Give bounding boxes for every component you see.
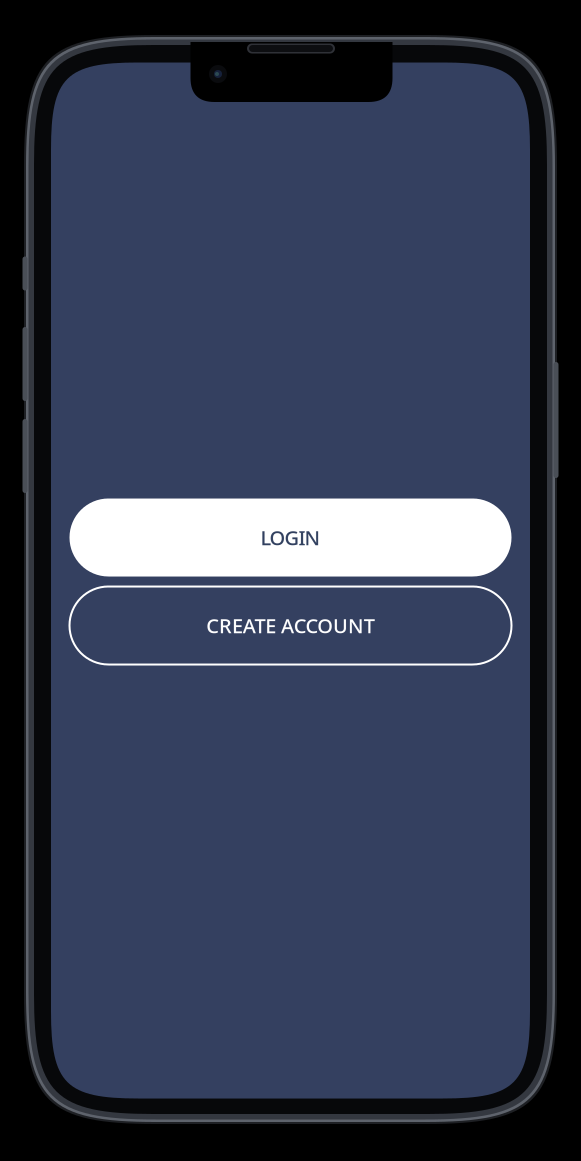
button[interactable]: LOGIN xyxy=(69,498,511,576)
button[interactable]: CREATE ACCOUNT xyxy=(69,586,511,664)
staticText: LOGIN xyxy=(260,524,320,551)
staticText: CREATE ACCOUNT xyxy=(206,612,375,639)
